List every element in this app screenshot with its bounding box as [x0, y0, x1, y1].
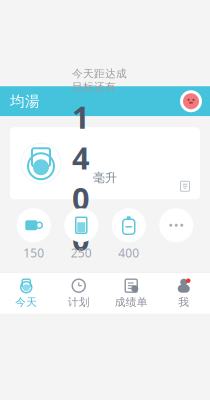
button[interactable]: 今天距达成目标还有 [10, 127, 200, 199]
staticText: 400 [118, 245, 139, 261]
staticText: 1400 [72, 96, 90, 259]
button[interactable]: Profile [176, 86, 206, 116]
staticText: 计划 [68, 296, 90, 309]
button[interactable]: 我 [157, 273, 210, 314]
staticText: 今天距达成目标还有 [72, 67, 127, 93]
button[interactable]: Add 250 milliliters [57, 207, 105, 258]
staticText: 今天 [15, 296, 37, 309]
button[interactable]: 成绩单 [105, 273, 157, 314]
staticText: 我 [178, 296, 189, 309]
staticText: 成绩单 [115, 296, 148, 309]
staticText: 毫升 [93, 170, 117, 185]
button[interactable]: 计划 [52, 273, 105, 314]
button[interactable]: Add 400 milliliters [105, 207, 152, 258]
button[interactable]: More [152, 207, 200, 258]
staticText: 250 [71, 245, 92, 261]
button[interactable]: 今天 [0, 273, 52, 314]
button[interactable]: Add 150 milliliters [10, 207, 57, 258]
staticText: 150 [23, 245, 44, 261]
staticText: 均湯 [10, 92, 40, 110]
